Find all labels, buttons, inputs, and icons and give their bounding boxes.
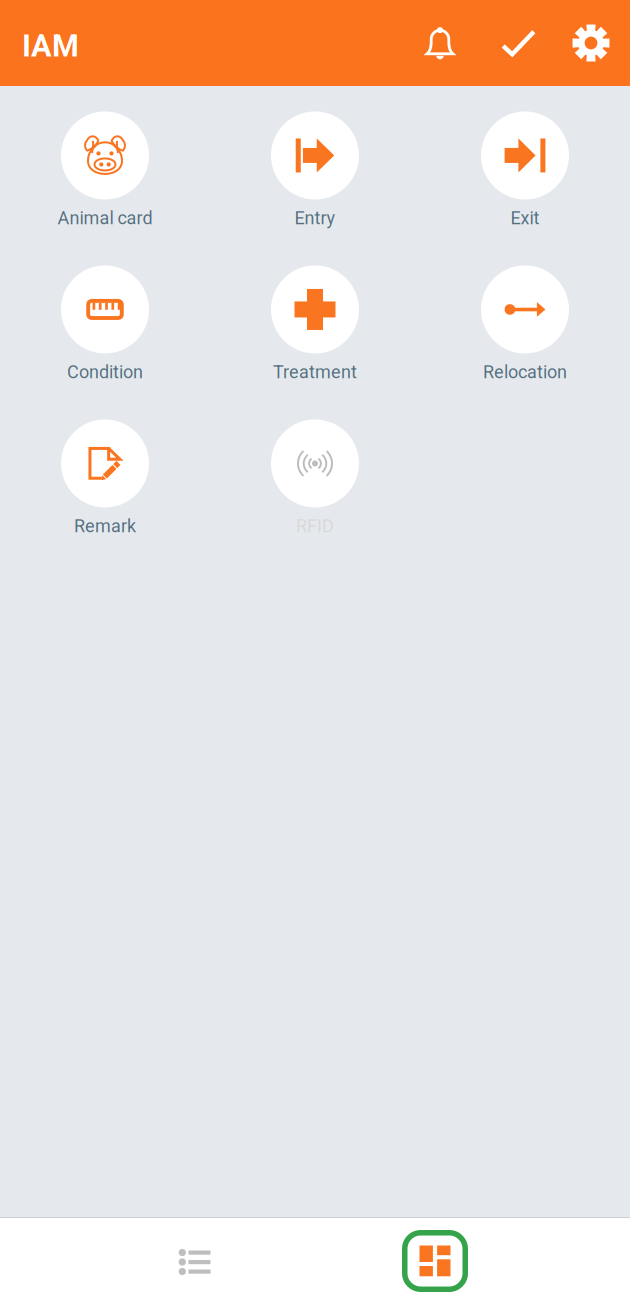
button[interactable]: List — [135, 1218, 255, 1300]
staticText: Animal card — [57, 207, 152, 229]
staticText: IAM — [22, 28, 79, 64]
button[interactable]: Settings — [572, 24, 610, 62]
staticText: Entry — [294, 207, 335, 229]
button[interactable]: Dashboard — [375, 1218, 495, 1300]
staticText: Exit — [510, 207, 539, 229]
button[interactable]: Entry — [210, 108, 420, 242]
staticText: Condition — [67, 361, 143, 383]
button[interactable]: Treatment — [210, 262, 420, 396]
button[interactable]: Notifications — [425, 25, 455, 60]
button[interactable]: Exit — [420, 108, 630, 242]
button[interactable]: Relocation — [420, 262, 630, 396]
staticText: Treatment — [273, 361, 357, 383]
button[interactable]: Condition — [0, 262, 210, 396]
button[interactable]: Confirm — [501, 29, 536, 56]
staticText: RFID — [296, 515, 334, 537]
staticText: Remark — [74, 515, 136, 537]
button[interactable]: RFID — [210, 416, 420, 550]
staticText: Relocation — [483, 361, 567, 383]
button[interactable]: Animal card — [0, 108, 210, 242]
button[interactable]: Remark — [0, 416, 210, 550]
